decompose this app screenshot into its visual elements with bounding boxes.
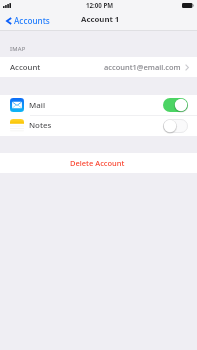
button[interactable]: Account [0, 57, 197, 77]
staticText: Accounts [14, 15, 50, 26]
staticText: account1@email.com [104, 62, 181, 72]
button[interactable]: true toggle on [163, 98, 188, 112]
other: Battery [182, 3, 194, 8]
button[interactable]: Accounts [0, 14, 54, 27]
staticText: Account [10, 62, 41, 73]
staticText: IMAP [10, 45, 26, 53]
button[interactable]: Notes [0, 115, 197, 136]
staticText: Account 1 [81, 14, 120, 25]
button[interactable]: Mail [0, 95, 197, 115]
button[interactable]: Delete Account [0, 153, 197, 173]
button[interactable]: toggle off [163, 119, 188, 133]
staticText: Delete Account [70, 158, 125, 168]
staticText: Notes [29, 120, 52, 131]
staticText: 12:00 PM [86, 1, 114, 9]
other: Open account [185, 64, 189, 71]
other: Cellular signal [3, 3, 11, 8]
staticText: Mail [29, 100, 46, 111]
